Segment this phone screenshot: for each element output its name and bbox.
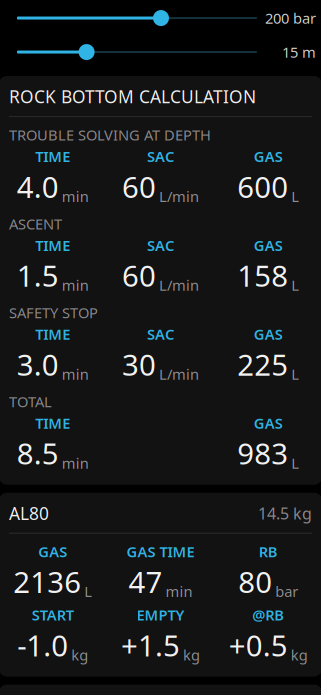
- staticText: SAC: [147, 235, 174, 255]
- staticText: bar: [275, 582, 298, 601]
- staticText: L: [291, 453, 299, 473]
- staticText: GAS: [254, 146, 283, 166]
- staticText: kg: [71, 645, 88, 665]
- staticText: 200 bar: [265, 8, 316, 28]
- button[interactable]: AL80: [0, 493, 321, 677]
- staticText: L: [291, 364, 299, 384]
- staticText: L: [84, 582, 92, 601]
- staticText: min: [165, 582, 192, 601]
- staticText: min: [62, 453, 89, 473]
- staticText: SAFETY STOP: [9, 303, 98, 322]
- staticText: 15 m: [282, 42, 316, 62]
- staticText: 1.5: [17, 256, 59, 295]
- staticText: 983: [237, 434, 288, 473]
- staticText: 60: [122, 256, 156, 295]
- staticText: EMPTY: [136, 605, 184, 625]
- staticText: +1.5: [121, 626, 180, 665]
- staticText: 30: [122, 345, 156, 384]
- staticText: ROCK BOTTOM CALCULATION: [9, 85, 256, 108]
- staticText: GAS: [254, 413, 283, 433]
- staticText: 3.0: [17, 345, 59, 384]
- staticText: @RB: [252, 605, 284, 625]
- staticText: L: [291, 275, 299, 295]
- staticText: min: [62, 186, 89, 206]
- staticText: 14.5 kg: [258, 503, 312, 524]
- staticText: 225: [237, 345, 288, 384]
- staticText: kg: [183, 645, 200, 665]
- staticText: GAS: [254, 235, 283, 255]
- staticText: GAS TIME: [126, 542, 194, 561]
- staticText: TIME: [35, 324, 70, 344]
- staticText: RB: [259, 542, 278, 561]
- staticText: min: [62, 275, 89, 295]
- staticText: TIME: [35, 413, 70, 433]
- staticText: TIME: [35, 146, 70, 166]
- staticText: 8.5: [17, 434, 59, 473]
- staticText: L/min: [159, 186, 199, 206]
- staticText: 4.0: [17, 167, 59, 206]
- staticText: L/min: [159, 275, 199, 295]
- staticText: 47: [128, 562, 162, 601]
- staticText: kg: [291, 645, 308, 665]
- staticText: -1.0: [17, 626, 68, 665]
- staticText: min: [62, 364, 89, 384]
- staticText: 2136: [13, 562, 81, 601]
- staticText: SAC: [147, 146, 174, 166]
- staticText: L/min: [159, 364, 199, 384]
- staticText: 80: [238, 562, 272, 601]
- staticText: 158: [237, 256, 288, 295]
- staticText: 600: [237, 167, 288, 206]
- staticText: 60: [122, 167, 156, 206]
- staticText: TOTAL: [9, 392, 52, 411]
- staticText: GAS: [254, 324, 283, 344]
- staticText: SAC: [147, 324, 174, 344]
- staticText: TROUBLE SOLVING AT DEPTH: [9, 125, 211, 145]
- staticText: GAS: [38, 542, 67, 561]
- staticText: TIME: [35, 235, 70, 255]
- staticText: L: [291, 186, 299, 206]
- staticText: ASCENT: [9, 214, 62, 233]
- staticText: +0.5: [229, 626, 288, 665]
- staticText: START: [32, 605, 74, 625]
- staticText: AL80: [9, 502, 49, 525]
